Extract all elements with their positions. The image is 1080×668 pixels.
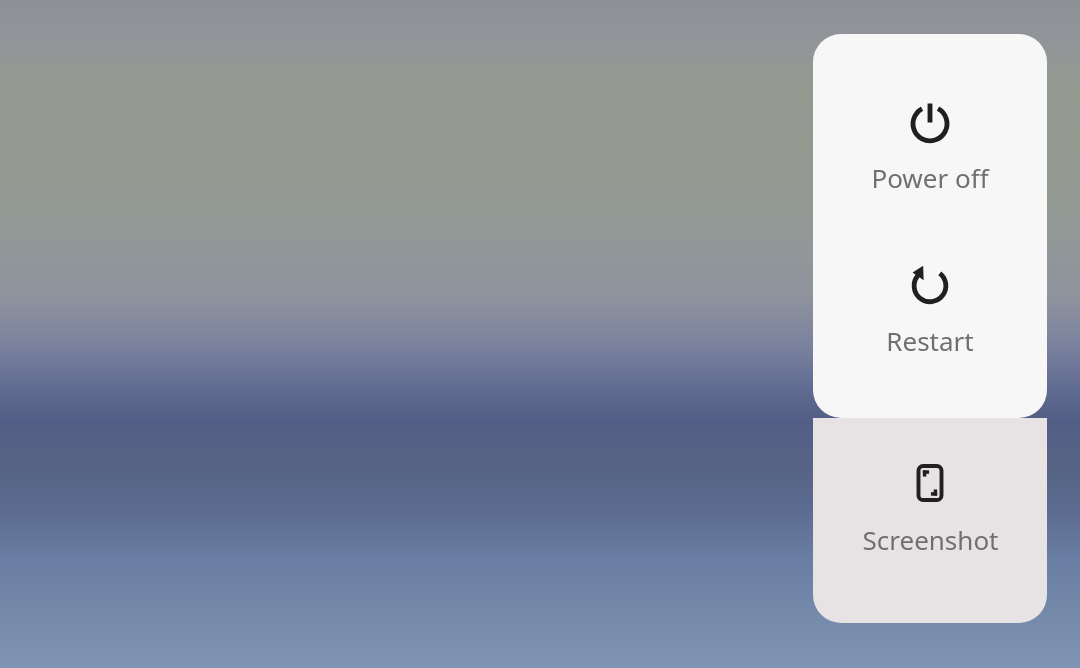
staticText: Power off — [871, 160, 989, 195]
other: Power off — [907, 98, 953, 144]
other: Restart — [907, 261, 953, 307]
button[interactable]: Screenshot — [813, 418, 1047, 565]
button[interactable]: Power off — [813, 34, 1047, 203]
staticText: Screenshot — [862, 522, 999, 557]
other: Screenshot — [907, 460, 953, 506]
button[interactable]: Restart — [813, 203, 1047, 366]
staticText: Restart — [886, 323, 974, 358]
